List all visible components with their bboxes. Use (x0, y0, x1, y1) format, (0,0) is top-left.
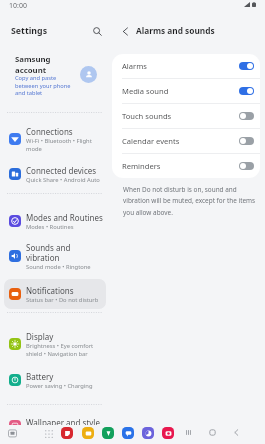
staticText: Wallpaper and style (26, 417, 100, 428)
button[interactable]: Recents (182, 426, 195, 439)
staticText: Quick Share • Android Auto (26, 176, 100, 184)
staticText: Sounds and vibration (26, 242, 71, 263)
button[interactable]: Split screen (6, 427, 19, 440)
button[interactable]: App 1 (82, 427, 94, 439)
staticText: Display (26, 331, 54, 342)
staticText: Modes and Routines (26, 212, 103, 223)
button[interactable]: App 2 (102, 427, 114, 439)
staticText: Connections (26, 126, 73, 137)
button[interactable]: Touch sounds (112, 104, 260, 128)
staticText: Reminders (122, 161, 239, 171)
button[interactable]: Media sound (112, 79, 260, 103)
staticText: Alarms (122, 61, 239, 71)
button[interactable]: Connected devices (4, 159, 106, 189)
staticText: Status bar • Do not disturb (26, 296, 99, 304)
button[interactable]: Search (90, 24, 105, 39)
button[interactable]: Back (230, 426, 243, 439)
staticText: When Do not disturb is on, sound and vib… (123, 185, 257, 217)
staticText: Media sound (122, 86, 239, 96)
button[interactable]: App 0 (61, 427, 73, 439)
button[interactable]: Sounds and vibration (4, 237, 106, 275)
staticText: Sound mode • Ringtone (26, 263, 91, 271)
button[interactable]: Home (206, 426, 219, 439)
button[interactable]: Samsung account (0, 49, 110, 103)
staticText: Modes • Routines (26, 223, 74, 231)
button[interactable]: App 4 (142, 427, 154, 439)
button[interactable]: Modes and Routines (4, 206, 106, 236)
staticText: Alarms and sounds (136, 25, 215, 36)
staticText: Calendar events (122, 136, 239, 146)
button[interactable]: Display (4, 325, 106, 363)
button[interactable]: App 3 (122, 427, 134, 439)
staticText: Power saving • Charging (26, 382, 93, 390)
staticText: Copy and paste between your phone and ta… (15, 74, 71, 97)
staticText: Wallpaper • Style (26, 428, 72, 436)
button[interactable]: Reminders (112, 154, 260, 178)
staticText: Notifications (26, 285, 74, 296)
button[interactable]: Connections (4, 120, 106, 158)
button[interactable]: Notifications (4, 279, 106, 309)
staticText: Settings (11, 25, 48, 37)
staticText: Wi-Fi • Bluetooth • Flight mode (26, 137, 92, 153)
staticText: Samsung account (15, 54, 71, 75)
staticText: 10:00 (9, 1, 27, 11)
button[interactable]: Back (118, 24, 132, 38)
staticText: Brightness • Eye comfort shield • Naviga… (26, 342, 94, 358)
button[interactable]: Alarms (112, 54, 260, 78)
button[interactable]: Calendar events (112, 129, 260, 153)
button[interactable]: Battery (4, 365, 106, 395)
staticText: Battery (26, 371, 54, 382)
button[interactable]: App 5 (162, 427, 174, 439)
staticText: Connected devices (26, 165, 97, 176)
button[interactable]: Wallpaper and style (4, 411, 106, 441)
staticText: Touch sounds (122, 111, 239, 121)
